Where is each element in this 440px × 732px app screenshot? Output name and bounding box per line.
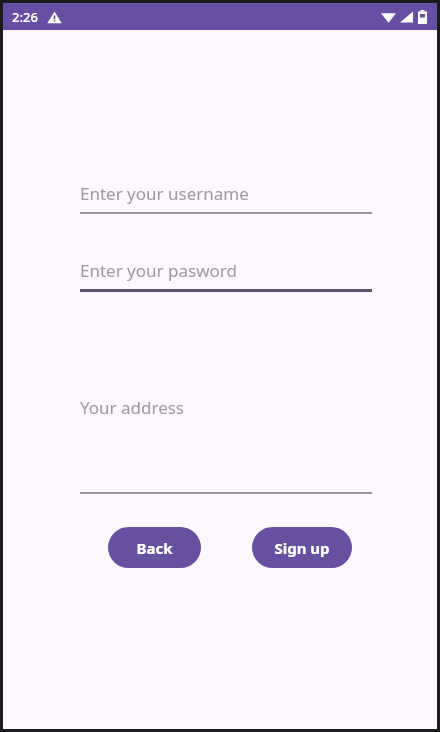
button[interactable]: Enter your username xyxy=(80,178,372,214)
staticText: Your address xyxy=(80,396,185,419)
staticText: 2:26 xyxy=(12,8,38,26)
staticText: Enter your pasword xyxy=(80,259,237,282)
staticText: Sign up xyxy=(274,538,330,558)
staticText: Back xyxy=(136,538,173,558)
button[interactable]: Sign up xyxy=(252,527,352,568)
button[interactable]: Back xyxy=(108,527,201,568)
button[interactable]: Enter your pasword xyxy=(80,255,372,292)
staticText: Enter your username xyxy=(80,182,249,205)
button[interactable]: Your address xyxy=(80,392,372,494)
